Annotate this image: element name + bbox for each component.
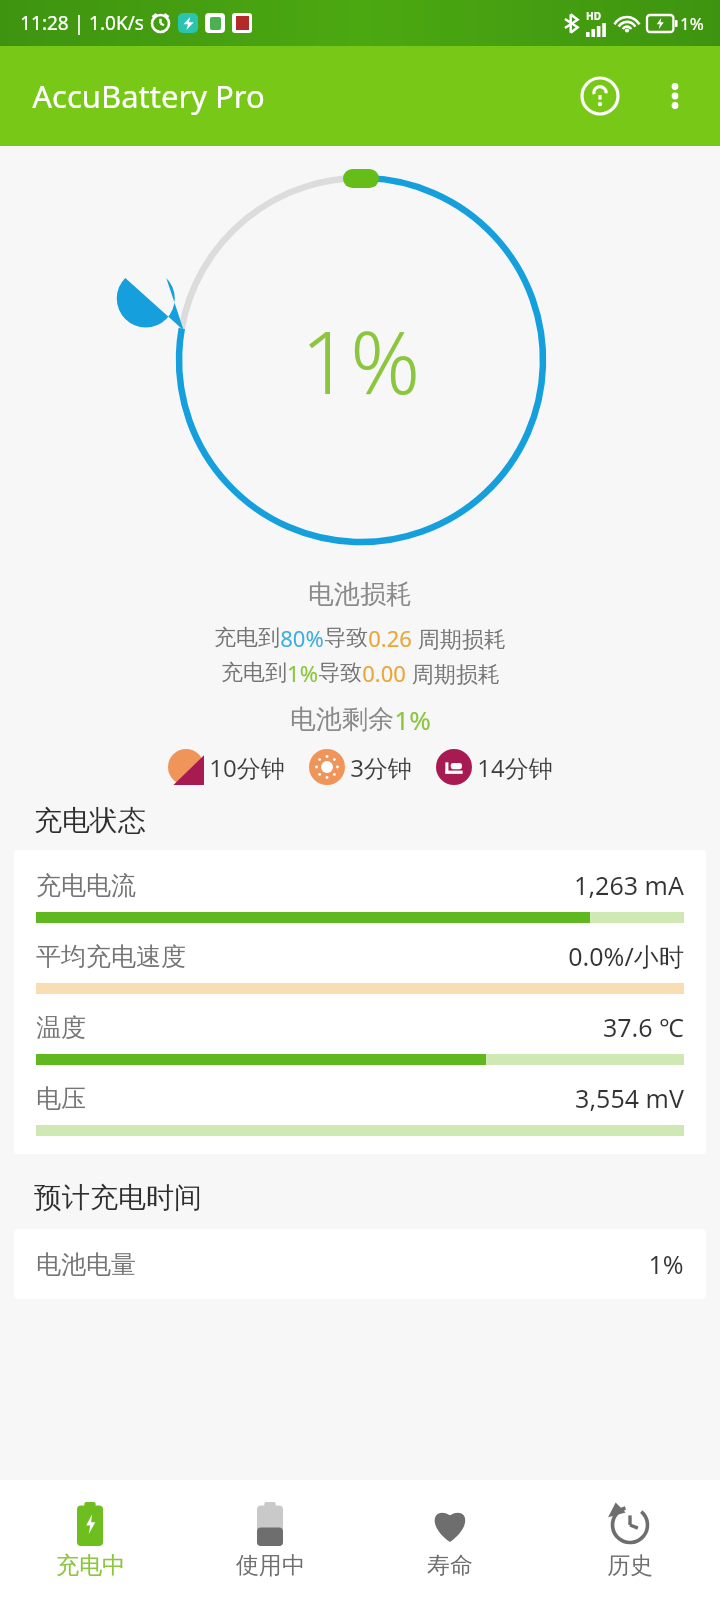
staticText: HD: [586, 9, 601, 23]
staticText: 0.00: [362, 658, 406, 688]
staticText: 37.6 ℃: [603, 1010, 684, 1044]
button[interactable]: 使用中: [180, 1495, 360, 1586]
staticText: 1%: [287, 658, 318, 688]
staticText: 充电中: [56, 1551, 125, 1580]
staticText: 3,554 mV: [575, 1081, 684, 1115]
staticText: 历史: [607, 1551, 653, 1580]
staticText: 1%: [648, 1247, 684, 1281]
staticText: 10分钟: [209, 751, 285, 784]
staticText: 温度: [36, 1012, 86, 1043]
staticText: 电池损耗: [308, 578, 412, 611]
staticText: 11:28 | 1.0K/s: [20, 10, 144, 36]
button[interactable]: 充电电流: [14, 850, 706, 1154]
staticText: 预计充电时间: [34, 1180, 202, 1215]
staticText: 充电电流: [36, 870, 136, 901]
staticText: 80%: [280, 623, 324, 653]
button[interactable]: Help: [572, 68, 628, 124]
staticText: 寿命: [427, 1551, 473, 1580]
staticText: 1%: [394, 702, 431, 737]
button[interactable]: 历史: [540, 1495, 720, 1586]
staticText: 充电到: [221, 659, 287, 687]
button[interactable]: 14分钟: [436, 749, 553, 785]
staticText: 电池电量: [36, 1249, 136, 1280]
staticText: 14分钟: [477, 751, 553, 784]
staticText: 使用中: [236, 1551, 305, 1580]
button[interactable]: 寿命: [360, 1495, 540, 1586]
staticText: 1%: [301, 302, 420, 419]
staticText: 电压: [36, 1083, 86, 1114]
staticText: 平均充电速度: [36, 941, 186, 972]
staticText: 0.26: [368, 623, 412, 653]
button[interactable]: 3分钟: [309, 749, 412, 785]
staticText: 电池剩余: [290, 703, 394, 736]
staticText: 导致: [324, 624, 368, 652]
staticText: 1,263 mA: [574, 868, 684, 902]
button[interactable]: 电池电量: [14, 1229, 706, 1299]
button[interactable]: More options: [648, 69, 702, 123]
staticText: 3分钟: [350, 751, 412, 784]
staticText: 0.0%/小时: [568, 939, 684, 973]
staticText: AccuBattery Pro: [32, 75, 265, 117]
staticText: 充电状态: [34, 803, 146, 838]
staticText: 周期损耗: [412, 623, 506, 653]
staticText: 周期损耗: [406, 658, 500, 688]
button[interactable]: 充电中: [0, 1495, 180, 1586]
button[interactable]: 10分钟: [168, 749, 285, 785]
staticText: 1%: [680, 12, 704, 35]
staticText: 充电到: [214, 624, 280, 652]
staticText: 导致: [318, 659, 362, 687]
